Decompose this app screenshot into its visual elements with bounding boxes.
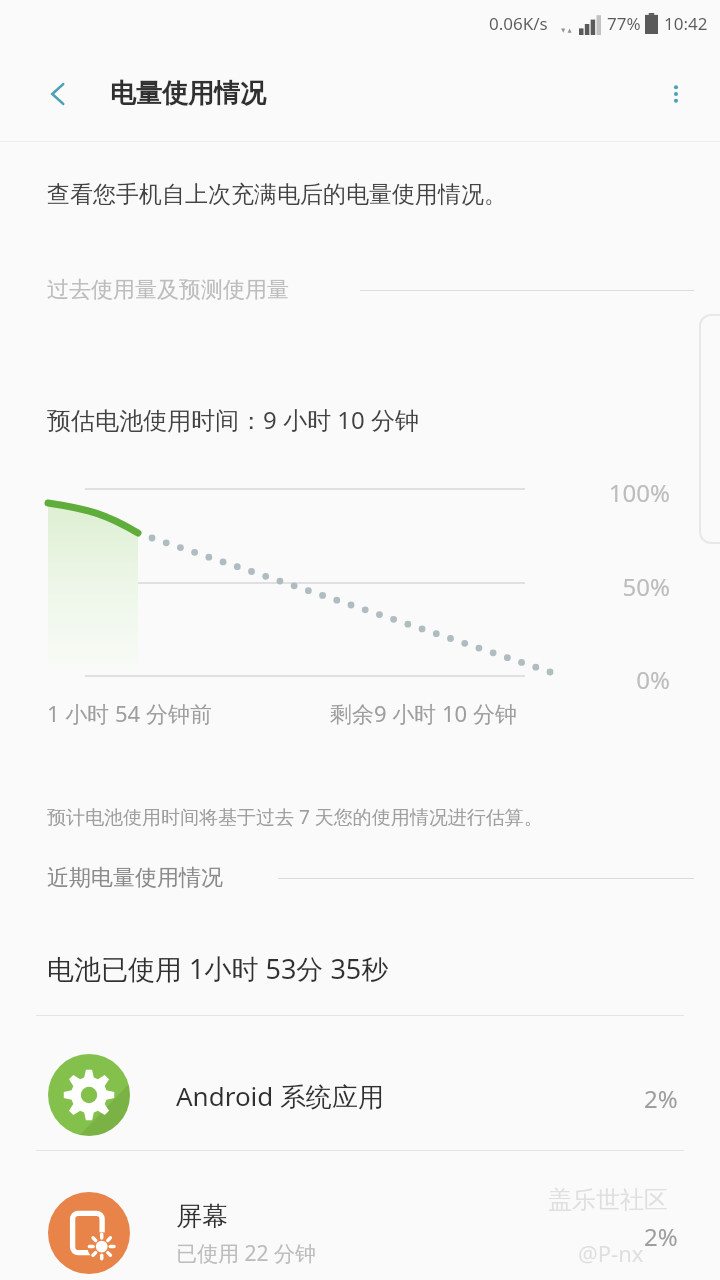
staticText: @P-nx (578, 1238, 644, 1268)
staticText: 1 小时 54 分钟前 (47, 698, 212, 728)
button[interactable]: 屏幕 (0, 1184, 720, 1280)
button[interactable]: Android 系统应用 (0, 1046, 720, 1150)
staticText: 2% (644, 1082, 678, 1115)
staticText: 查看您手机自上次充满电后的电量使用情况。 (47, 180, 507, 209)
staticText: 屏幕 (176, 1200, 228, 1233)
button[interactable]: More options (648, 66, 704, 122)
staticText: 0% (540, 663, 670, 696)
staticText: 电池已使用 1小时 53分 35秒 (47, 950, 389, 987)
button[interactable]: Back (30, 66, 86, 122)
staticText: Android 系统应用 (176, 1078, 385, 1114)
staticText: 近期电量使用情况 (47, 864, 223, 892)
staticText: 预估电池使用时间：9 小时 10 分钟 (47, 403, 419, 436)
staticText: 50% (540, 570, 670, 603)
staticText: 0.06K/s (489, 12, 548, 35)
staticText: 盖乐世社区 (548, 1185, 668, 1215)
staticText: 预计电池使用时间将基于过去 7 天您的使用情况进行估算。 (47, 804, 543, 830)
staticText: 过去使用量及预测使用量 (47, 276, 289, 304)
staticText: 2% (644, 1220, 678, 1253)
staticText: 100% (540, 476, 670, 509)
staticText: 剩余9 小时 10 分钟 (330, 698, 517, 728)
staticText: 已使用 22 分钟 (176, 1239, 316, 1268)
staticText: 10:42 (664, 12, 708, 35)
staticText: 77% (607, 12, 641, 35)
staticText: 电量使用情况 (110, 77, 266, 110)
